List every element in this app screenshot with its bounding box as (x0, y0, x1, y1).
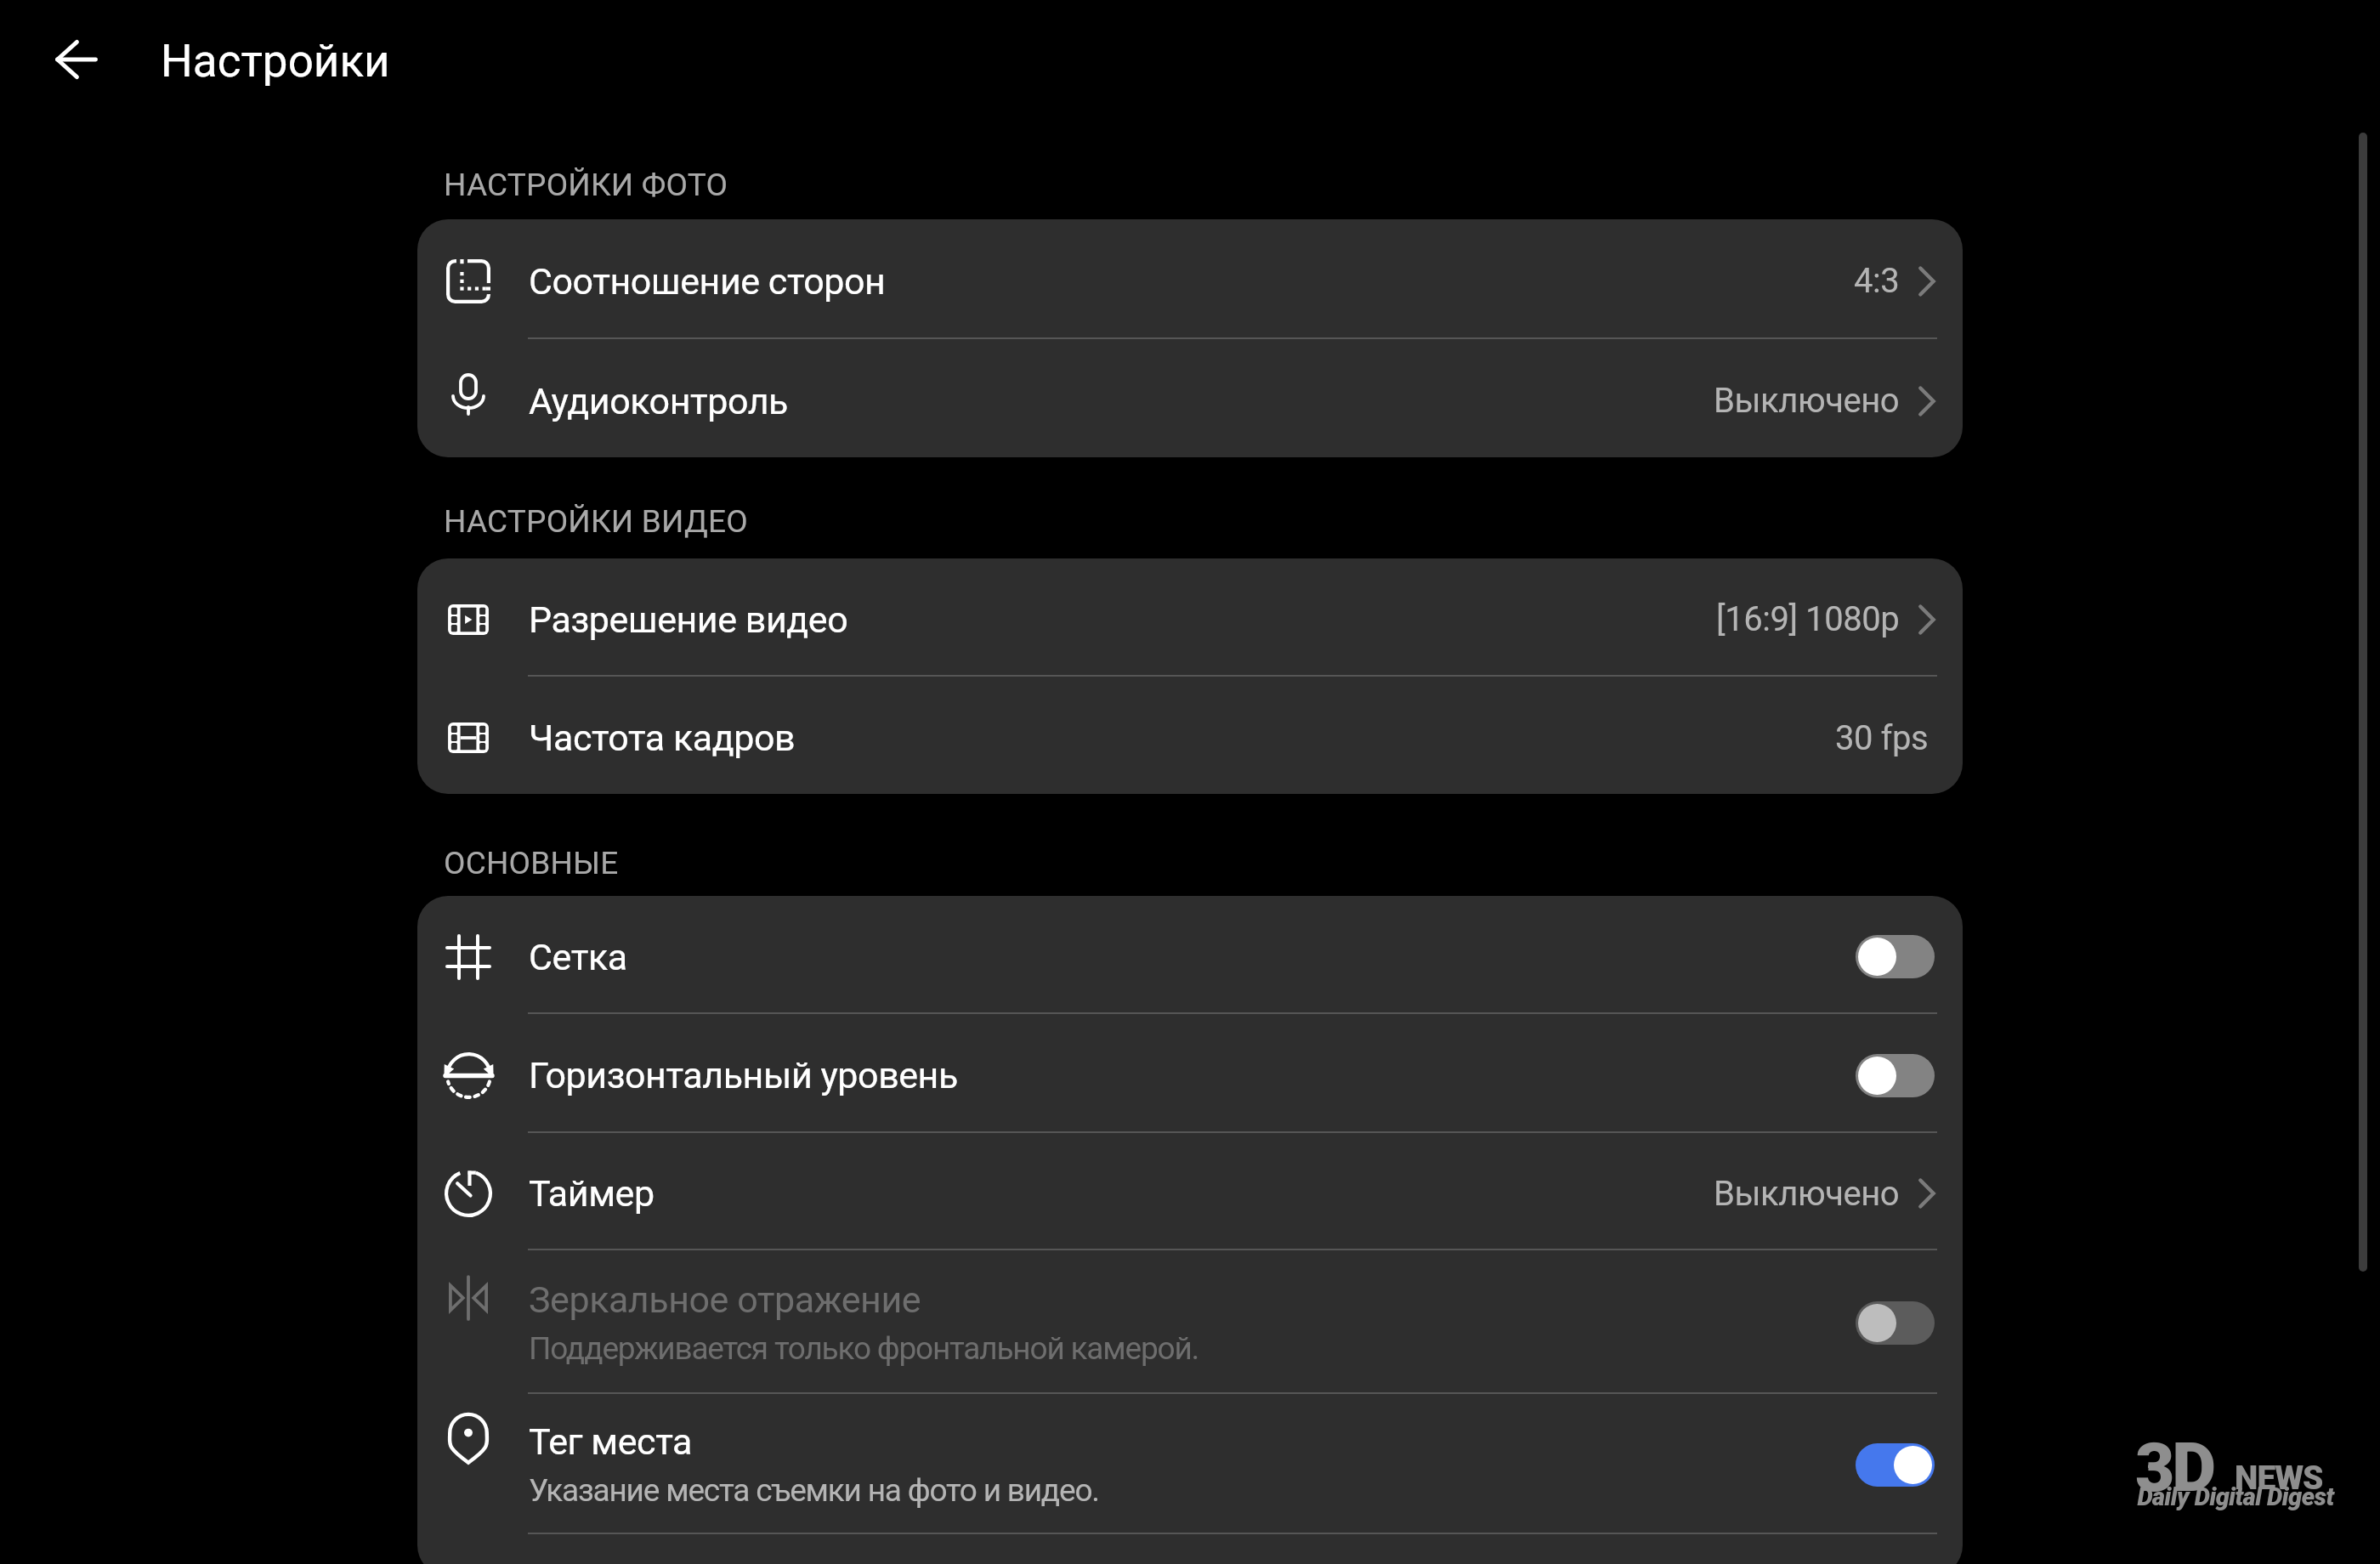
button[interactable]: Горизонтальный уровень (417, 1014, 1963, 1131)
button[interactable]: Аудиоконтроль (417, 339, 1963, 457)
button[interactable]: Сетка (417, 896, 1963, 1012)
button[interactable]: Back (36, 19, 117, 100)
staticText: 3D (2135, 1428, 2214, 1508)
staticText: [16:9] 1080p (1716, 599, 1900, 639)
staticText: Выключено (1714, 1174, 1900, 1214)
button[interactable]: Разрешение видео (417, 558, 1963, 675)
staticText: Разрешение видео (529, 598, 848, 641)
staticText: Daily Digital Digest (2137, 1482, 2334, 1511)
staticText: Настройки (161, 35, 390, 88)
staticText: Частота кадров (529, 717, 796, 759)
staticText: Аудиоконтроль (529, 380, 788, 422)
staticText: NEWS (2235, 1459, 2323, 1498)
staticText: Тег места (529, 1420, 692, 1463)
staticText: Выключено (1714, 381, 1900, 421)
button[interactable]: Частота кадров (417, 677, 1963, 794)
staticText: Указание места съемки на фото и видео. (529, 1472, 1099, 1509)
staticText: ОСНОВНЫЕ (444, 845, 619, 881)
staticText: Сетка (529, 936, 627, 978)
staticText: НАСТРОЙКИ ФОТО (444, 167, 728, 203)
staticText: 4:3 (1854, 261, 1900, 301)
staticText: Горизонтальный уровень (529, 1054, 958, 1096)
button[interactable]: Таймер (417, 1133, 1963, 1249)
staticText: 30 fps (1835, 718, 1929, 758)
button[interactable]: Тег места (417, 1394, 1963, 1533)
staticText: Таймер (529, 1172, 654, 1215)
staticText: Поддерживается только фронтальной камеро… (529, 1330, 1199, 1367)
button[interactable]: Соотношение сторон (417, 219, 1963, 337)
staticText: Зеркальное отражение (529, 1278, 921, 1321)
staticText: НАСТРОЙКИ ВИДЕО (444, 503, 748, 540)
staticText: Соотношение сторон (529, 260, 886, 303)
button[interactable]: Зеркальное отражение (417, 1250, 1963, 1392)
